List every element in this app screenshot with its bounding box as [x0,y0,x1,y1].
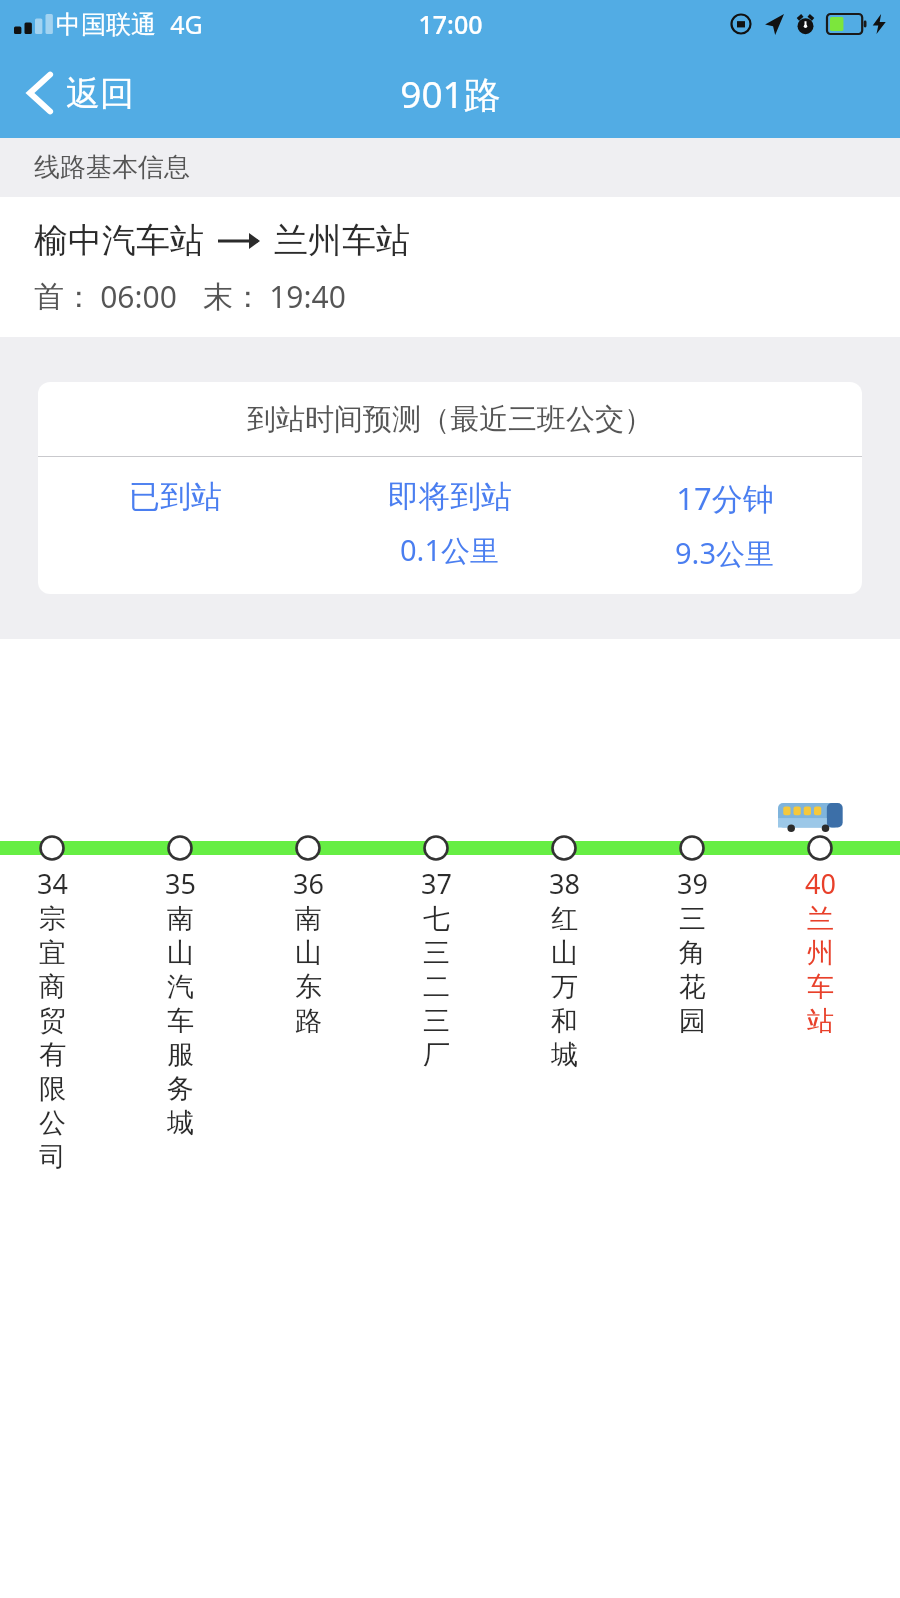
staticText: 花 [679,970,706,1004]
staticText: 榆中汽车站 [34,219,204,262]
staticText: 17分钟 [676,477,774,519]
button[interactable]: 34 [7,835,97,1174]
staticText: 0.1公里 [400,530,499,570]
other: Bus position [778,799,844,833]
staticText: 兰 [807,902,834,936]
staticText: 19:40 [269,276,346,317]
staticText: 06:00 [100,276,177,317]
staticText: 山 [295,936,322,970]
staticText: 37 [421,865,452,902]
staticText: 已到站 [129,477,222,516]
button[interactable]: 40 [775,835,865,1038]
staticText: 山 [551,936,578,970]
staticText: 角 [679,936,706,970]
staticText: 首： [34,278,94,316]
staticText: 有 [39,1038,66,1072]
staticText: 车 [807,970,834,1004]
staticText: 38 [549,865,580,902]
staticText: 南 [167,902,194,936]
staticText: 中国联通 [56,9,156,40]
staticText: 万 [551,970,578,1004]
staticText: 即将到站 [388,477,512,516]
button[interactable]: 38 [519,835,609,1072]
staticText: 东 [295,970,322,1004]
staticText: 二 [423,970,450,1004]
staticText: 34 [37,865,68,902]
button[interactable]: 到站时间预测（最近三班公交） [38,382,862,594]
staticText: 司 [39,1140,66,1174]
staticText: 17:00 [418,7,483,41]
staticText: 35 [165,865,196,902]
staticText: 返回 [66,72,134,115]
staticText: 商 [39,970,66,1004]
staticText: 公 [39,1106,66,1140]
staticText: 务 [167,1072,194,1106]
staticText: 城 [167,1106,194,1140]
button[interactable]: 35 [135,835,225,1140]
staticText: 贸 [39,1004,66,1038]
button[interactable]: 37 [391,835,481,1072]
staticText: 和 [551,1004,578,1038]
staticText: 4G [170,7,203,41]
staticText: 厂 [423,1038,450,1072]
button[interactable]: 39 [647,835,737,1038]
staticText: 39 [677,865,708,902]
staticText: 车 [167,1004,194,1038]
staticText: 汽 [167,970,194,1004]
staticText: 三 [679,902,706,936]
staticText: 到站时间预测（最近三班公交） [247,401,653,438]
staticText: 限 [39,1072,66,1106]
staticText: 9.3公里 [675,533,774,573]
staticText: 红 [551,902,578,936]
staticText: 城 [551,1038,578,1072]
staticText: 路 [295,1004,322,1038]
staticText: 园 [679,1004,706,1038]
staticText: 山 [167,936,194,970]
staticText: 南 [295,902,322,936]
staticText: 901路 [400,68,501,119]
button[interactable]: 36 [263,835,353,1038]
staticText: 36 [293,865,324,902]
button[interactable]: 返回 [0,62,152,124]
staticText: 兰州车站 [274,219,410,262]
staticText: 40 [805,865,836,902]
staticText: 站 [807,1004,834,1038]
staticText: 末： [203,278,263,316]
staticText: 宗 [39,902,66,936]
staticText: 三 [423,936,450,970]
staticText: 宜 [39,936,66,970]
staticText: 服 [167,1038,194,1072]
staticText: 州 [807,936,834,970]
staticText: 线路基本信息 [34,151,190,184]
staticText: 三 [423,1004,450,1038]
staticText: 七 [423,902,450,936]
